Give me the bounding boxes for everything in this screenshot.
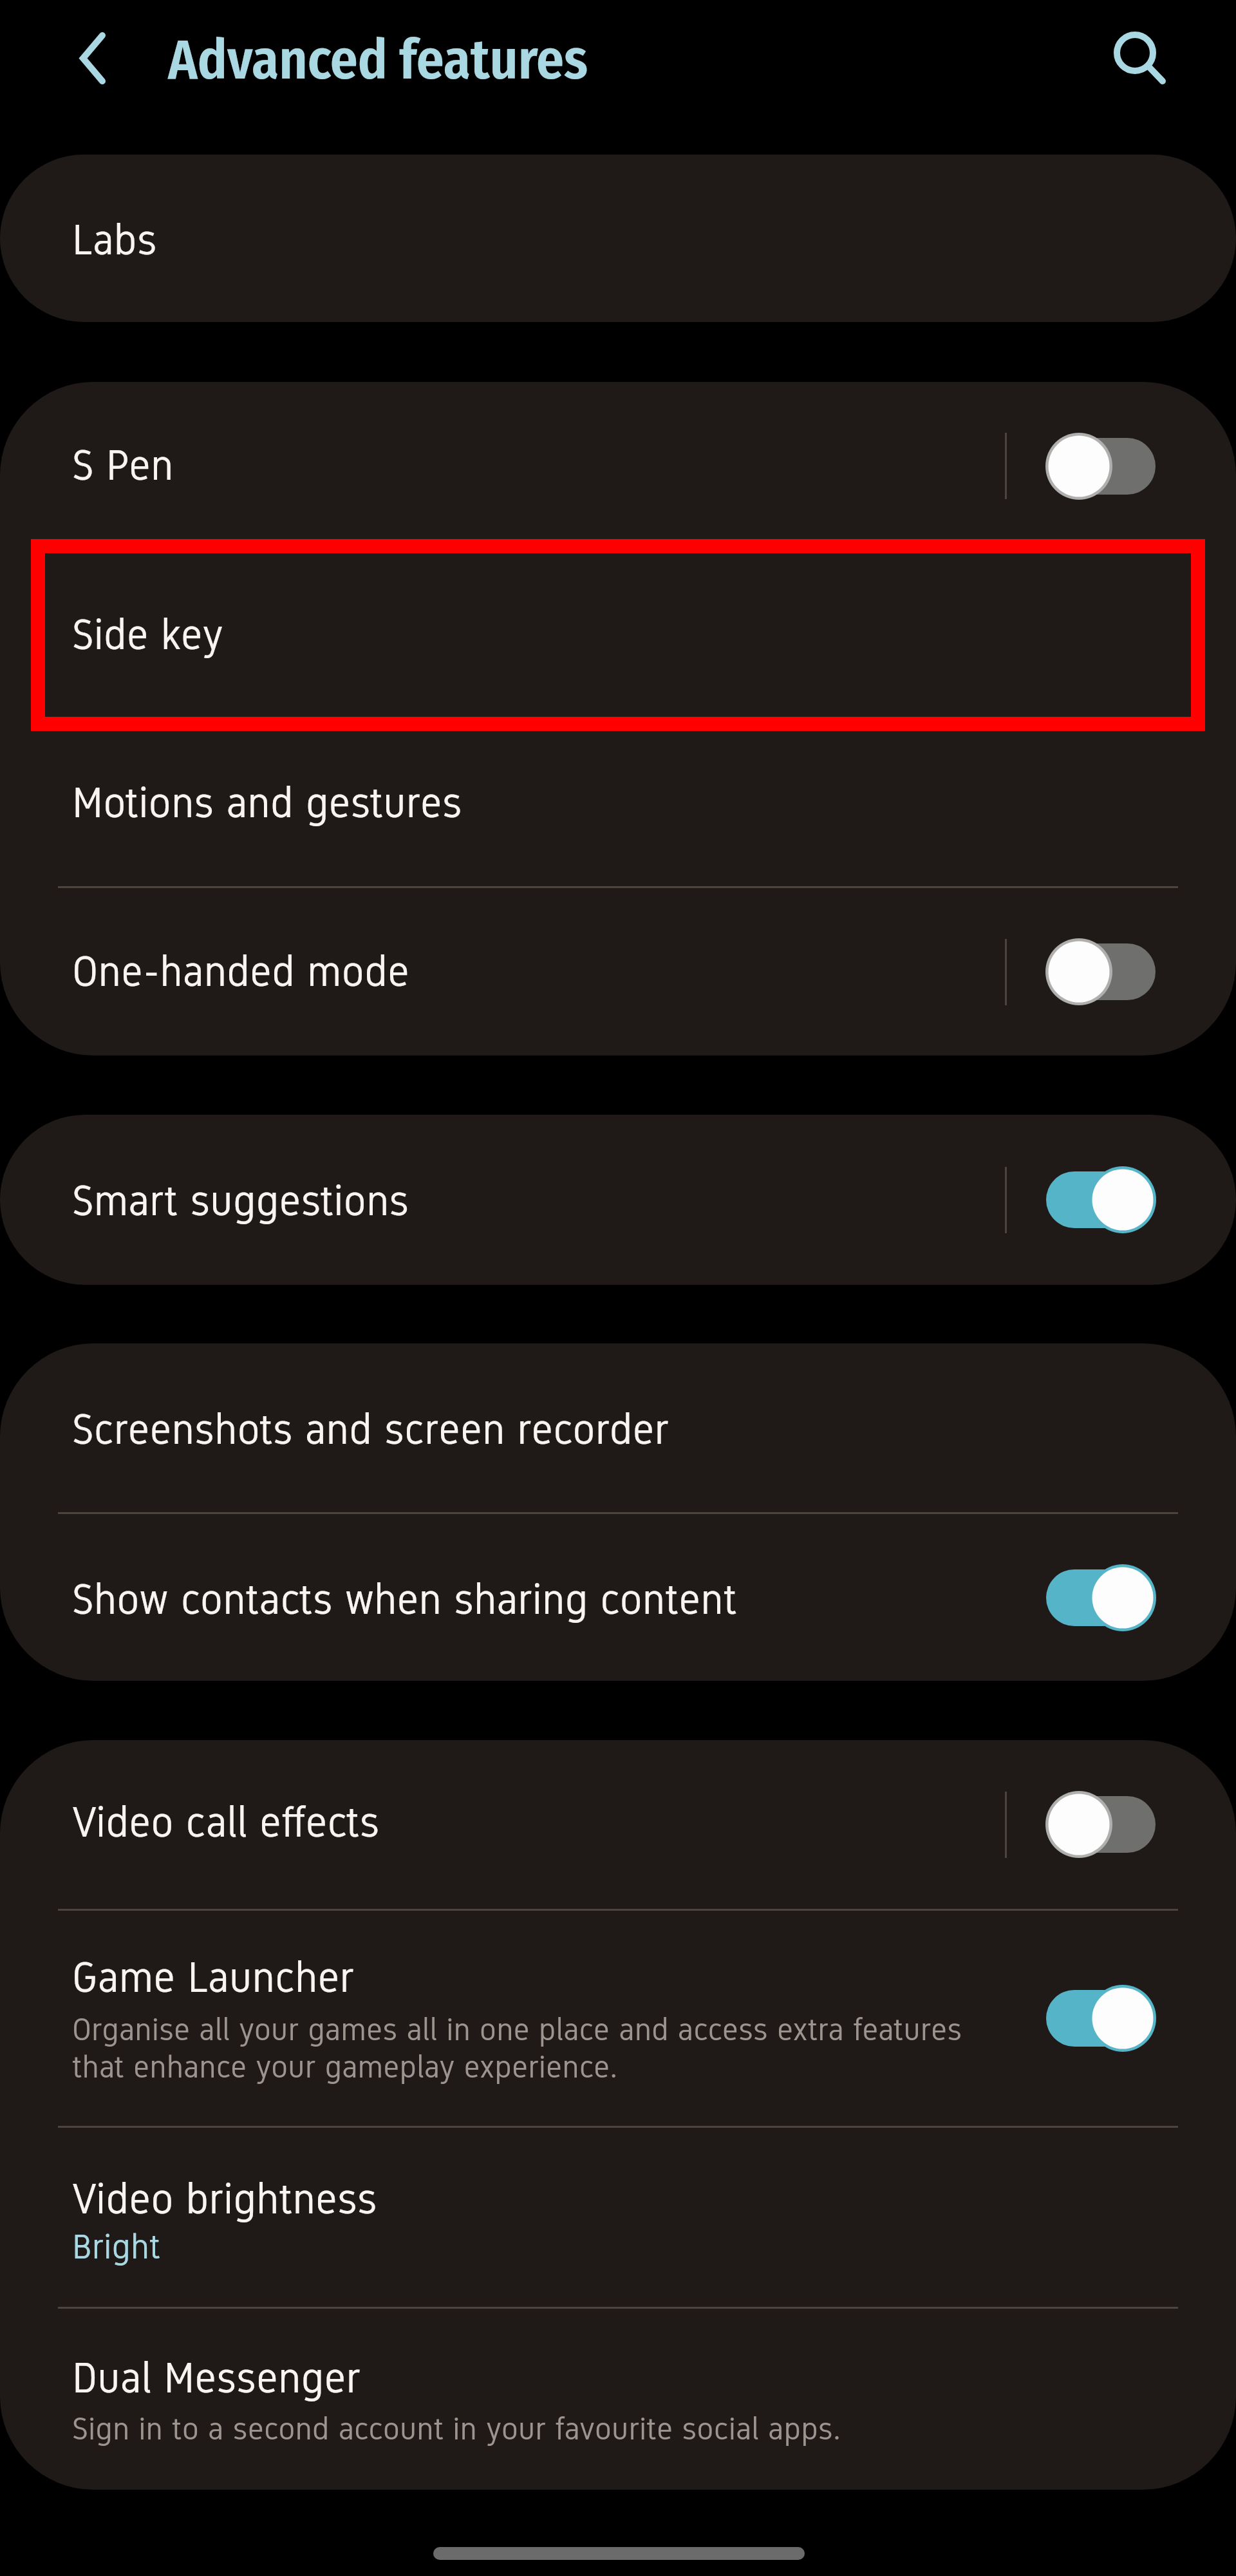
button[interactable]: Video brightness bbox=[0, 2128, 1236, 2307]
staticText: Side key bbox=[72, 609, 223, 661]
button[interactable]: Video call effects bbox=[0, 1740, 1236, 1909]
staticText: Motions and gestures bbox=[72, 777, 462, 829]
button[interactable]: Dual Messenger bbox=[0, 2309, 1236, 2490]
button[interactable]: Search bbox=[1081, 0, 1204, 122]
button[interactable]: Smart suggestions bbox=[0, 1115, 1236, 1285]
staticText: Smart suggestions bbox=[72, 1175, 409, 1227]
staticText: One-handed mode bbox=[72, 945, 409, 998]
staticText: Video brightness bbox=[72, 2173, 377, 2225]
staticText: Game Launcher bbox=[72, 1951, 354, 2003]
staticText: Screenshots and screen recorder bbox=[72, 1403, 669, 1455]
staticText: Labs bbox=[72, 214, 157, 266]
button[interactable]: Navigate up bbox=[35, 6, 151, 116]
button[interactable]: Screenshots and screen recorder bbox=[0, 1343, 1236, 1512]
button[interactable]: Game Launcher bbox=[0, 1911, 1236, 2126]
button[interactable]: S Pen bbox=[0, 382, 1236, 550]
staticText: Advanced features bbox=[168, 28, 588, 93]
staticText: Sign in to a second account in your favo… bbox=[72, 2409, 841, 2448]
staticText: Dual Messenger bbox=[72, 2352, 360, 2404]
button[interactable]: Motions and gestures bbox=[0, 718, 1236, 886]
button[interactable]: Show contacts when sharing content bbox=[0, 1514, 1236, 1681]
staticText: Show contacts when sharing content bbox=[72, 1573, 737, 1625]
staticText: Video call effects bbox=[72, 1796, 380, 1848]
button[interactable]: Labs bbox=[0, 155, 1236, 322]
staticText: Bright bbox=[72, 2225, 161, 2268]
button[interactable]: Side key bbox=[0, 550, 1236, 718]
button[interactable]: One-handed mode bbox=[0, 888, 1236, 1056]
staticText: S Pen bbox=[72, 439, 174, 491]
staticText: Organise all your games all in one place… bbox=[72, 2010, 966, 2087]
